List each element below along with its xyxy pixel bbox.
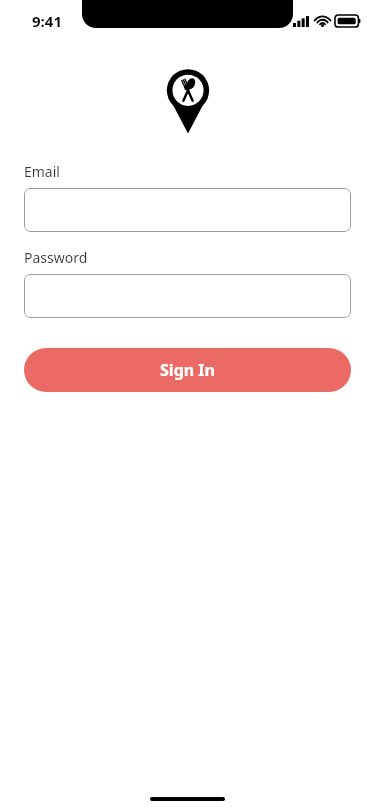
staticText: Sign In (160, 359, 215, 381)
button[interactable] (24, 188, 351, 232)
button[interactable] (24, 274, 351, 318)
other: Restaurant locator logo (159, 66, 217, 136)
staticText: Email (24, 162, 60, 181)
staticText: 9:41 (32, 11, 62, 31)
button[interactable]: Sign In (24, 348, 351, 392)
staticText: Password (24, 248, 88, 267)
